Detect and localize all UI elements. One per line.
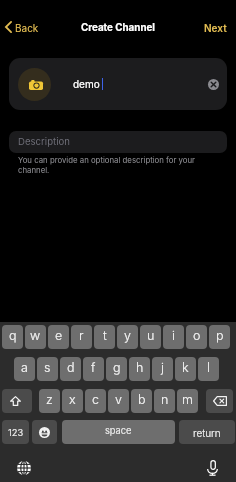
button[interactable]: r	[71, 325, 92, 349]
button[interactable]: Description	[9, 131, 227, 153]
staticText: s	[44, 360, 51, 375]
button[interactable]: c	[85, 389, 106, 413]
staticText: b	[138, 392, 146, 407]
button[interactable]: Emoji	[32, 420, 57, 444]
button[interactable]: p	[209, 325, 230, 349]
button[interactable]: h	[129, 357, 150, 381]
button[interactable]: x	[62, 389, 83, 413]
staticText: Next	[204, 22, 227, 34]
button[interactable]: o	[186, 325, 207, 349]
staticText: l	[207, 360, 210, 375]
button[interactable]: d	[60, 357, 81, 381]
button[interactable]: m	[177, 389, 198, 413]
staticText: i	[172, 328, 175, 343]
staticText: e	[55, 328, 63, 343]
button[interactable]: f	[83, 357, 104, 381]
staticText: return	[193, 427, 221, 439]
staticText: u	[147, 328, 155, 343]
button[interactable]: Change keyboard	[13, 457, 35, 479]
button[interactable]: Dictation	[201, 457, 223, 479]
button[interactable]: i	[163, 325, 184, 349]
button[interactable]: space	[62, 420, 175, 444]
staticText: z	[46, 392, 53, 407]
button[interactable]: v	[108, 389, 129, 413]
staticText: j	[161, 360, 164, 375]
staticText: f	[91, 360, 96, 375]
button[interactable]: g	[106, 357, 127, 381]
button[interactable]: 123	[2, 420, 29, 444]
staticText: Create Channel	[81, 22, 155, 34]
button[interactable]: Shift	[2, 389, 32, 413]
button[interactable]: t	[94, 325, 115, 349]
button[interactable]: b	[131, 389, 152, 413]
staticText: v	[115, 392, 122, 407]
button[interactable]: k	[175, 357, 196, 381]
staticText: Description	[18, 136, 70, 148]
button[interactable]: u	[140, 325, 161, 349]
button[interactable]: Clear text	[206, 77, 220, 91]
button[interactable]: n	[154, 389, 175, 413]
staticText: p	[216, 328, 224, 343]
staticText: w	[30, 328, 41, 343]
button[interactable]: y	[117, 325, 138, 349]
button[interactable]: Back	[2, 15, 42, 41]
staticText: demo	[73, 78, 100, 90]
staticText: d	[67, 360, 75, 375]
staticText: n	[161, 392, 169, 407]
staticText: o	[193, 328, 201, 343]
staticText: m	[182, 392, 193, 407]
button[interactable]: e	[48, 325, 69, 349]
staticText: You can provide an optional description …	[18, 155, 204, 175]
staticText: a	[21, 360, 28, 375]
staticText: 123	[8, 427, 24, 438]
staticText: g	[113, 360, 121, 375]
button[interactable]: j	[152, 357, 173, 381]
staticText: y	[124, 328, 131, 343]
staticText: q	[9, 328, 17, 343]
button[interactable]: Add channel photo	[18, 68, 51, 101]
staticText: h	[136, 360, 144, 375]
button[interactable]: s	[37, 357, 58, 381]
staticText: t	[103, 328, 107, 343]
staticText: k	[182, 360, 189, 375]
staticText: space	[105, 425, 132, 436]
staticText: x	[69, 392, 76, 407]
button[interactable]: z	[39, 389, 60, 413]
button[interactable]: Next	[195, 15, 236, 41]
staticText: r	[79, 328, 84, 343]
button[interactable]: q	[2, 325, 23, 349]
staticText: c	[92, 392, 99, 407]
button[interactable]: w	[25, 325, 46, 349]
staticText: Back	[15, 22, 39, 34]
button[interactable]: Backspace	[206, 389, 233, 413]
button[interactable]: return	[179, 420, 235, 444]
button[interactable]: l	[198, 357, 219, 381]
button[interactable]: a	[14, 357, 35, 381]
